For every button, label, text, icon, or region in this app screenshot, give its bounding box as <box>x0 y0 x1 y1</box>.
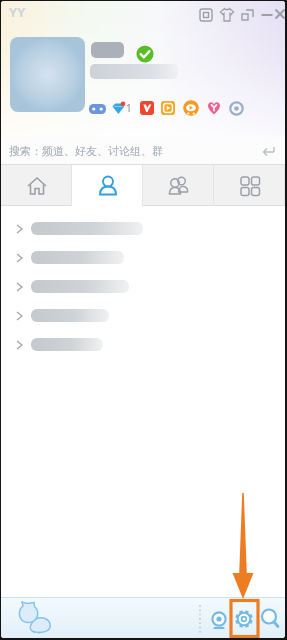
button[interactable] <box>15 602 57 636</box>
button[interactable] <box>198 7 214 23</box>
button[interactable] <box>219 7 235 23</box>
button[interactable] <box>1 330 285 359</box>
staticText: 搜索：频道、好友、讨论组、群 <box>9 144 163 158</box>
button[interactable] <box>1 164 72 206</box>
button[interactable] <box>1 301 285 330</box>
button[interactable] <box>111 101 126 116</box>
button[interactable] <box>140 101 154 115</box>
button[interactable] <box>161 101 175 115</box>
staticText: 1 <box>126 101 132 115</box>
button[interactable] <box>183 100 199 116</box>
button[interactable] <box>229 101 244 116</box>
button[interactable] <box>260 7 274 21</box>
button[interactable] <box>232 607 256 631</box>
button[interactable] <box>274 7 285 20</box>
staticText: YY <box>9 3 26 21</box>
button[interactable]: 搜索：频道、好友、讨论组、群 <box>1 137 285 164</box>
button[interactable] <box>207 609 231 633</box>
button[interactable] <box>10 37 85 112</box>
button[interactable] <box>1 214 285 243</box>
button[interactable] <box>89 101 106 116</box>
button[interactable] <box>143 164 214 206</box>
button[interactable] <box>258 606 282 630</box>
button[interactable] <box>214 164 285 206</box>
button[interactable] <box>1 272 285 301</box>
button[interactable] <box>206 100 222 116</box>
button[interactable] <box>240 7 255 22</box>
button[interactable] <box>1 243 285 272</box>
button[interactable] <box>72 164 143 206</box>
